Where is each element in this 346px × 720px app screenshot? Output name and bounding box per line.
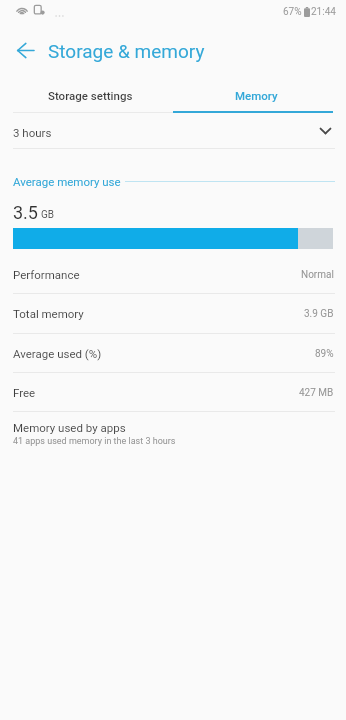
- staticText: 3 hours: [13, 126, 52, 139]
- staticText: Free: [13, 386, 36, 399]
- button[interactable]: Total memory: [0, 294, 346, 333]
- staticText: Memory: [235, 89, 278, 102]
- staticText: 41 apps used memory in the last 3 hours: [13, 436, 176, 447]
- staticText: Storage settings: [48, 89, 133, 102]
- staticText: Average memory use: [13, 175, 121, 188]
- button[interactable]: Memory used by apps: [0, 417, 346, 455]
- staticText: Total memory: [13, 307, 84, 320]
- staticText: Memory used by apps: [13, 421, 126, 434]
- staticText: 67%: [283, 6, 302, 18]
- button[interactable]: Free: [0, 373, 346, 412]
- button[interactable]: Average used (%): [0, 334, 346, 373]
- staticText: 89%: [315, 348, 334, 360]
- staticText: 3.9 GB: [304, 308, 334, 320]
- staticText: GB: [41, 209, 55, 221]
- staticText: Normal: [301, 269, 334, 281]
- staticText: Performance: [13, 268, 80, 281]
- button[interactable]: 3 hours: [0, 118, 346, 148]
- staticText: Storage & memory: [48, 40, 205, 62]
- button[interactable]: Memory: [173, 78, 339, 112]
- staticText: 3.5: [13, 202, 38, 223]
- staticText: 21:44: [311, 6, 336, 18]
- staticText: 427 MB: [299, 387, 334, 399]
- button[interactable]: Back: [5, 28, 45, 68]
- button[interactable]: Performance: [0, 255, 346, 294]
- button[interactable]: Storage settings: [8, 78, 173, 112]
- staticText: Average used (%): [13, 347, 102, 360]
